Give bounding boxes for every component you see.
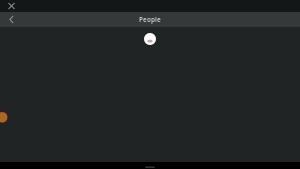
button[interactable]: Back: [0, 12, 23, 27]
button[interactable]: Close: [0, 0, 23, 12]
staticText: People: [139, 15, 161, 24]
